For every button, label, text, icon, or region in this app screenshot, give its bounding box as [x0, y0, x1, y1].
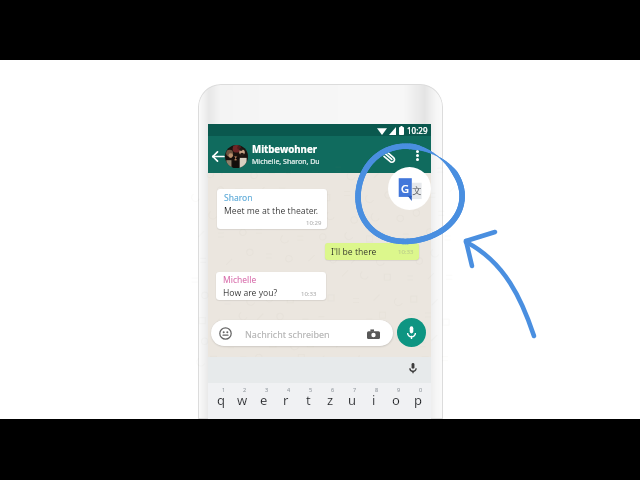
button[interactable]: 1	[210, 383, 231, 419]
staticText: 文	[412, 185, 422, 197]
button[interactable]: Google Translate	[388, 167, 431, 210]
staticText: 2	[243, 386, 247, 393]
staticText: 0	[419, 386, 423, 393]
button[interactable]: 3	[253, 383, 275, 419]
staticText: 3	[265, 386, 269, 393]
button[interactable]: 2	[231, 383, 253, 419]
staticText: o	[392, 391, 400, 409]
button[interactable]: Back	[209, 147, 227, 165]
staticText: 10:29	[407, 125, 428, 136]
staticText: How are you?	[223, 287, 278, 299]
staticText: Nachricht schreiben	[245, 328, 330, 340]
button[interactable]: More options	[409, 147, 425, 163]
button[interactable]: Record voice message	[397, 318, 426, 347]
button[interactable]: Nachricht schreiben	[211, 320, 393, 346]
button[interactable]: 7	[341, 383, 363, 419]
staticText: e	[260, 391, 268, 409]
staticText: 9	[397, 386, 401, 393]
staticText: 6	[331, 386, 335, 393]
staticText: i	[372, 391, 376, 409]
button[interactable]: 0	[407, 383, 429, 419]
button[interactable]: Attach	[382, 146, 400, 164]
staticText: Michelle, Sharon, Du	[252, 157, 320, 167]
staticText: Mitbewohner	[252, 143, 318, 156]
staticText: p	[414, 391, 422, 409]
staticText: Sharon	[224, 192, 253, 204]
staticText: 5	[309, 386, 313, 393]
staticText: 10:33	[398, 248, 414, 256]
button[interactable]: 6	[319, 383, 341, 419]
staticText: 8	[375, 386, 379, 393]
staticText: 1	[222, 386, 226, 393]
staticText: q	[217, 391, 225, 409]
button[interactable]: Voice input	[405, 360, 421, 376]
staticText: 10:33	[301, 290, 317, 298]
staticText: 4	[287, 386, 291, 393]
staticText: t	[306, 391, 311, 409]
staticText: Michelle	[223, 274, 257, 286]
button[interactable]: 9	[385, 383, 407, 419]
staticText: u	[348, 391, 357, 409]
staticText: r	[283, 391, 289, 409]
staticText: 10:29	[306, 219, 322, 227]
button[interactable]: 5	[297, 383, 319, 419]
staticText: G	[401, 181, 409, 196]
button[interactable]: 4	[275, 383, 297, 419]
staticText: 7	[353, 386, 357, 393]
staticText: w	[237, 391, 248, 409]
staticText: I'll be there	[331, 246, 377, 258]
staticText: Meet me at the theater.	[224, 205, 319, 217]
button[interactable]: 8	[363, 383, 385, 419]
button[interactable]: Camera	[365, 326, 381, 342]
staticText: z	[327, 391, 334, 409]
